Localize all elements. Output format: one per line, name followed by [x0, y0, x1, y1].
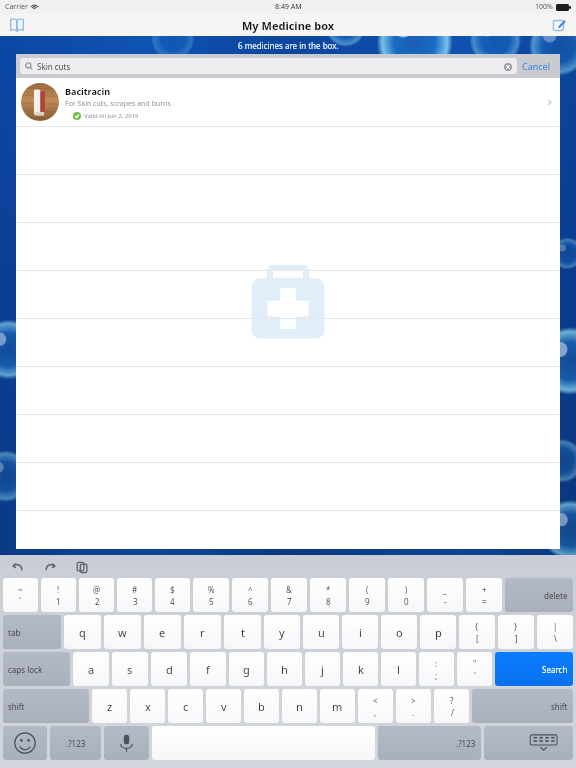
button[interactable]: # — [117, 578, 152, 612]
button[interactable]: i — [342, 615, 378, 649]
staticText: a — [88, 662, 95, 677]
button[interactable]: o — [381, 615, 417, 649]
staticText: 7 — [287, 596, 292, 607]
button[interactable]: Emoji — [3, 726, 47, 760]
button[interactable]: h — [267, 652, 302, 686]
button[interactable]: caps lock — [3, 652, 70, 686]
button[interactable]: r — [184, 615, 221, 649]
button[interactable]: { — [459, 615, 495, 649]
staticText: j — [321, 662, 324, 677]
button[interactable]: m — [320, 689, 355, 723]
button[interactable]: x — [130, 689, 165, 723]
staticText: w — [118, 625, 127, 640]
staticText: ; — [435, 670, 438, 681]
button[interactable]: * — [310, 578, 346, 612]
button[interactable]: < — [358, 689, 393, 723]
staticText: ` — [19, 596, 22, 607]
staticText: d — [166, 662, 173, 677]
staticText: ! — [57, 584, 60, 595]
button[interactable]: + — [466, 578, 502, 612]
button[interactable]: Dictate — [104, 726, 149, 760]
staticText: tab — [8, 627, 21, 638]
button[interactable]: t — [224, 615, 261, 649]
button[interactable]: @ — [79, 578, 114, 612]
button[interactable]: ^ — [232, 578, 268, 612]
button[interactable]: " — [457, 652, 492, 686]
button[interactable]: f — [190, 652, 226, 686]
staticText: h — [281, 662, 288, 677]
staticText: k — [358, 662, 364, 677]
button[interactable]: Search — [495, 652, 573, 686]
staticText: + — [482, 584, 487, 595]
button[interactable]: % — [193, 578, 229, 612]
staticText: p — [435, 625, 442, 640]
staticText: % — [208, 584, 215, 595]
staticText: 2 — [95, 596, 100, 607]
button[interactable]: a — [73, 652, 109, 686]
button[interactable]: shift — [472, 689, 573, 723]
button[interactable]: Library — [6, 14, 28, 36]
button[interactable]: Redo — [42, 559, 58, 575]
button[interactable]: z — [92, 689, 127, 723]
button[interactable]: | — [537, 615, 573, 649]
staticText: _ — [443, 584, 447, 595]
staticText: 0 — [404, 596, 409, 607]
staticText: , — [374, 707, 377, 718]
staticText: Valid till Jun 2, 2019 — [84, 112, 139, 120]
button[interactable]: j — [305, 652, 340, 686]
button[interactable]: Paste — [74, 559, 90, 575]
button[interactable]: $ — [155, 578, 190, 612]
button[interactable]: y — [264, 615, 300, 649]
staticText: o — [396, 625, 403, 640]
button[interactable]: w — [104, 615, 141, 649]
staticText: y — [279, 625, 285, 640]
button[interactable]: l — [381, 652, 416, 686]
button[interactable]: ! — [41, 578, 76, 612]
staticText: 3 — [133, 596, 138, 607]
staticText: | — [553, 621, 558, 632]
button[interactable]: e — [144, 615, 181, 649]
button[interactable]: p — [420, 615, 456, 649]
button[interactable]: s — [112, 652, 148, 686]
button[interactable]: .?123 — [378, 726, 481, 760]
button[interactable]: } — [498, 615, 534, 649]
staticText: For Skin cuts, scrapes and burns — [65, 99, 171, 109]
staticText: 1 — [56, 596, 61, 607]
button[interactable]: Hide keyboard — [484, 726, 573, 760]
staticText: ~ — [18, 584, 23, 595]
button[interactable]: n — [282, 689, 317, 723]
button[interactable]: _ — [427, 578, 463, 612]
button[interactable]: ? — [434, 689, 469, 723]
button[interactable]: Cancel — [517, 57, 556, 75]
button[interactable]: u — [303, 615, 339, 649]
button[interactable]: ~ — [3, 578, 38, 612]
button[interactable]: q — [64, 615, 101, 649]
button[interactable]: b — [244, 689, 279, 723]
button[interactable]: shift — [3, 689, 89, 723]
button[interactable]: & — [271, 578, 307, 612]
button[interactable]: Skin cuts — [20, 58, 517, 74]
button[interactable]: c — [168, 689, 203, 723]
button[interactable]: .?123 — [50, 726, 101, 760]
button[interactable]: ( — [349, 578, 385, 612]
button[interactable]: v — [206, 689, 241, 723]
button[interactable]: Compose — [548, 14, 570, 36]
button[interactable]: Bacitracin — [16, 78, 560, 126]
button[interactable]: tab — [3, 615, 61, 649]
staticText: delete — [544, 590, 568, 601]
button[interactable]: delete — [505, 578, 573, 612]
button[interactable]: Clear text — [503, 62, 512, 71]
staticText: m — [332, 699, 343, 714]
staticText: .?123 — [456, 738, 476, 749]
button[interactable]: d — [151, 652, 187, 686]
button[interactable]: Undo — [10, 559, 26, 575]
button[interactable]: ) — [388, 578, 424, 612]
staticText: # — [132, 584, 138, 595]
staticText: ^ — [248, 584, 253, 595]
staticText: $ — [170, 584, 175, 595]
button[interactable]: k — [343, 652, 378, 686]
button[interactable]: > — [396, 689, 431, 723]
button[interactable]: g — [229, 652, 264, 686]
button[interactable]: : — [419, 652, 454, 686]
